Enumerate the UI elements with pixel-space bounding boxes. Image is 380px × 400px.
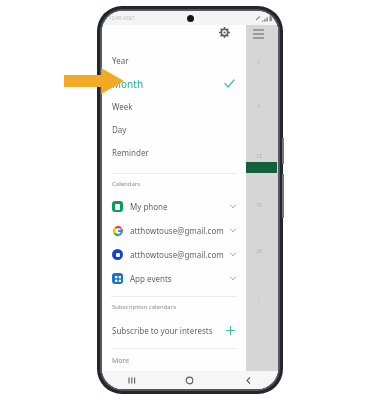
staticText: 12: [256, 153, 262, 160]
staticText: More: [112, 356, 130, 366]
button[interactable]: atthowtouse@gmail.com: [102, 242, 246, 266]
staticText: Day: [112, 124, 127, 135]
button[interactable]: Year: [102, 49, 246, 72]
staticText: Week: [112, 101, 133, 112]
staticText: App events: [130, 273, 172, 284]
staticText: 26: [256, 248, 262, 255]
staticText: 12:45 AT&T: [109, 15, 135, 22]
button[interactable]: More: [102, 356, 246, 366]
staticText: atthowtouse@gmail.com: [130, 249, 224, 260]
button[interactable]: Back: [219, 371, 278, 389]
button[interactable]: Subscribe to your interests: [102, 317, 246, 343]
staticText: 6: [257, 59, 260, 66]
button[interactable]: Week: [102, 95, 246, 118]
staticText: My phone: [130, 201, 168, 212]
button[interactable]: Month: [102, 72, 246, 95]
button[interactable]: App events: [102, 266, 246, 290]
staticText: Reminder: [112, 147, 149, 158]
staticText: 3: [257, 298, 260, 305]
staticText: Subscribe to your interests: [112, 325, 213, 336]
button[interactable]: My phone: [102, 194, 246, 218]
button[interactable]: Recent apps: [102, 371, 160, 389]
staticText: 19: [256, 202, 262, 209]
staticText: Year: [112, 55, 129, 66]
button[interactable]: Reminder: [102, 141, 246, 164]
button[interactable]: Day: [102, 118, 246, 141]
button[interactable]: atthowtouse@gmail.com: [102, 218, 246, 242]
staticText: Month: [112, 77, 144, 91]
button[interactable]: Home: [160, 371, 219, 389]
staticText: atthowtouse@gmail.com: [130, 225, 224, 236]
staticText: Subscription calendars: [112, 303, 177, 311]
button[interactable]: Open navigation drawer: [239, 24, 278, 44]
staticText: Calendars: [112, 180, 141, 188]
button[interactable]: Settings: [214, 22, 234, 42]
staticText: 9: [257, 103, 260, 110]
